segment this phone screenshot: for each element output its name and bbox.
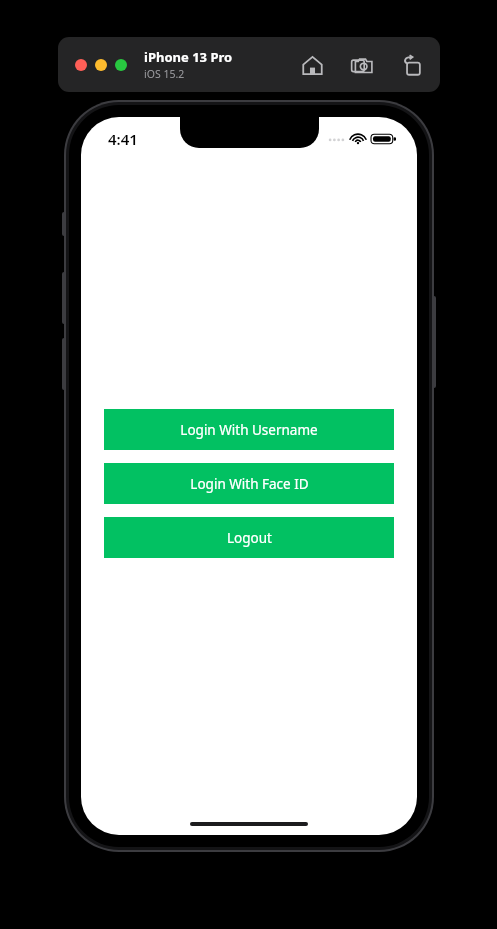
staticText: Login With Username: [180, 421, 318, 439]
button[interactable]: Minimize: [95, 59, 107, 71]
button[interactable]: Close: [75, 59, 87, 71]
button[interactable]: Login With Username: [104, 409, 394, 450]
staticText: Login With Face ID: [190, 475, 309, 493]
staticText: Logout: [227, 529, 272, 547]
button[interactable]: Home: [298, 51, 326, 79]
button[interactable]: Zoom: [115, 59, 127, 71]
button[interactable]: Logout: [104, 517, 394, 558]
button[interactable]: Screenshot: [348, 51, 376, 79]
staticText: iPhone 13 Pro: [144, 48, 233, 66]
staticText: iOS 15.2: [144, 67, 185, 81]
button[interactable]: Rotate: [398, 51, 426, 79]
staticText: 4:41: [108, 129, 138, 149]
button[interactable]: Login With Face ID: [104, 463, 394, 504]
